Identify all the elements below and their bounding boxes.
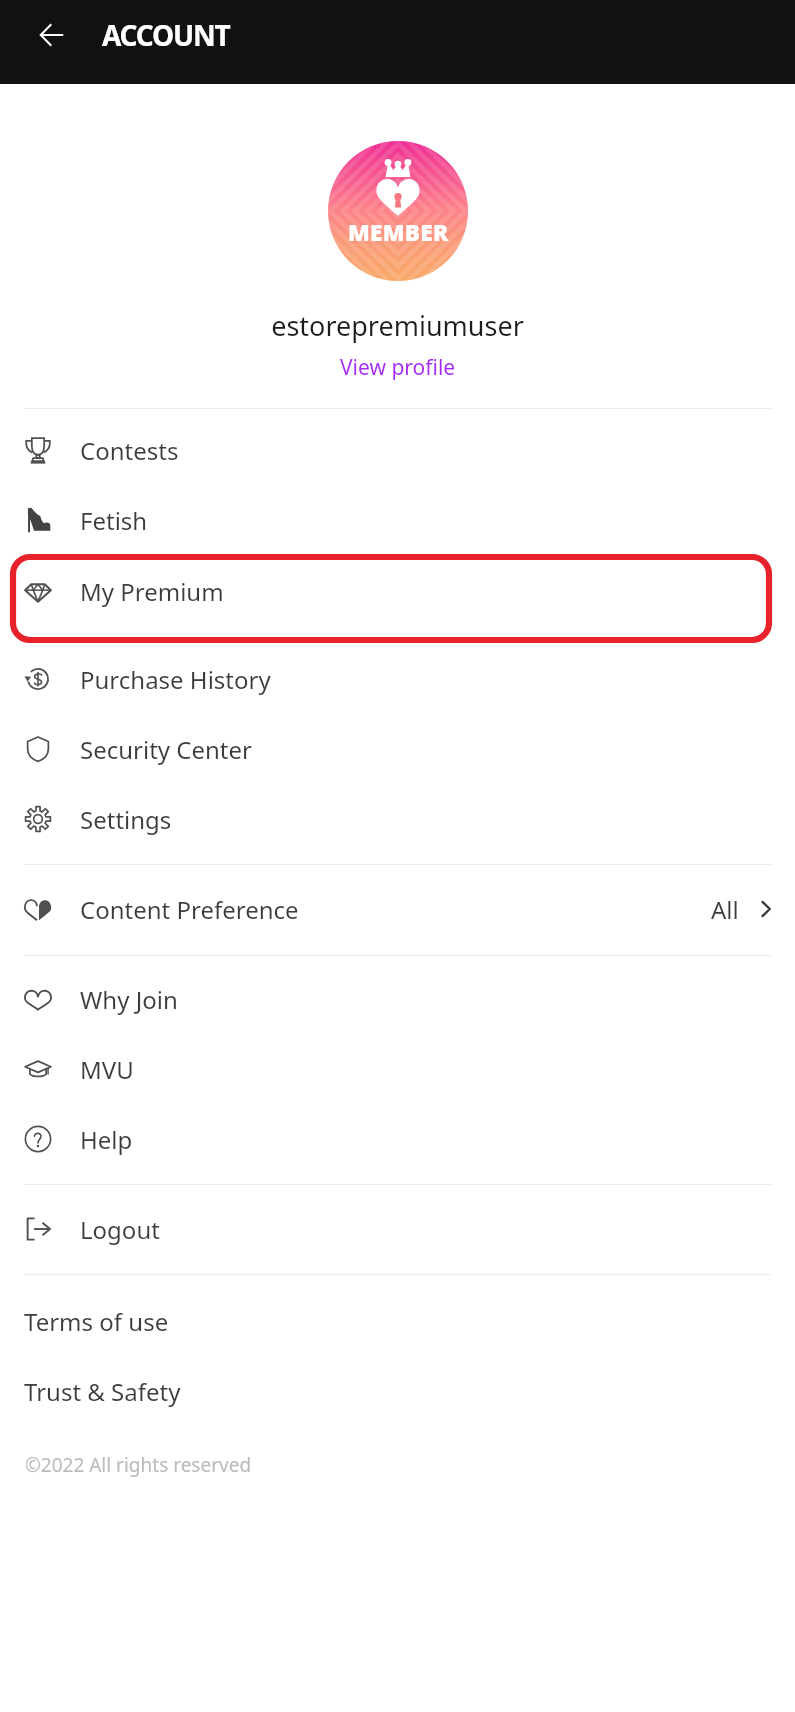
staticText: Purchase History — [80, 663, 271, 696]
staticText: Fetish — [80, 504, 148, 537]
staticText: Settings — [80, 803, 172, 836]
button[interactable]: Terms of use — [0, 1286, 795, 1356]
button[interactable]: Settings — [0, 784, 795, 854]
button[interactable]: Back — [0, 0, 104, 69]
staticText: Why Join — [80, 983, 178, 1016]
button[interactable]: Contests — [0, 415, 795, 485]
staticText: MEMBER — [348, 217, 449, 248]
button[interactable]: Purchase History — [0, 644, 795, 714]
button[interactable]: Help — [0, 1104, 795, 1174]
button[interactable]: Why Join — [0, 964, 795, 1034]
button[interactable]: Fetish — [0, 485, 795, 555]
button[interactable]: MVU — [0, 1034, 795, 1104]
staticText: View profile — [340, 353, 456, 382]
staticText: ©2022 All rights reserved — [25, 1452, 252, 1478]
staticText: ACCOUNT — [102, 16, 230, 54]
staticText: estorepremiumuser — [0, 307, 795, 344]
button[interactable]: Security Center — [0, 714, 795, 784]
staticText: Content Preference — [80, 893, 299, 926]
staticText: Contests — [80, 434, 179, 467]
staticText: Terms of use — [24, 1305, 169, 1338]
button[interactable]: Trust & Safety — [0, 1356, 795, 1426]
staticText: All — [711, 893, 739, 926]
button[interactable]: View profile — [330, 350, 466, 385]
staticText: Security Center — [80, 733, 252, 766]
staticText: Help — [80, 1123, 133, 1156]
staticText: Logout — [80, 1213, 160, 1246]
staticText: My Premium — [80, 575, 224, 608]
button[interactable]: Logout — [0, 1194, 795, 1264]
button[interactable]: My Premium — [0, 556, 795, 626]
button[interactable]: Content Preference — [0, 874, 795, 944]
staticText: Trust & Safety — [24, 1375, 181, 1408]
staticText: MVU — [80, 1053, 134, 1086]
